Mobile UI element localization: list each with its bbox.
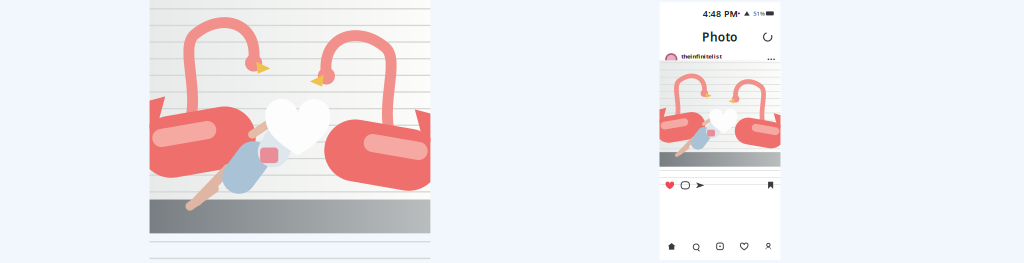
- staticText: San Fernando, California: [685, 68, 727, 73]
- staticText: theinfinitelist: [685, 61, 721, 68]
- staticText: Photo: [704, 40, 736, 54]
